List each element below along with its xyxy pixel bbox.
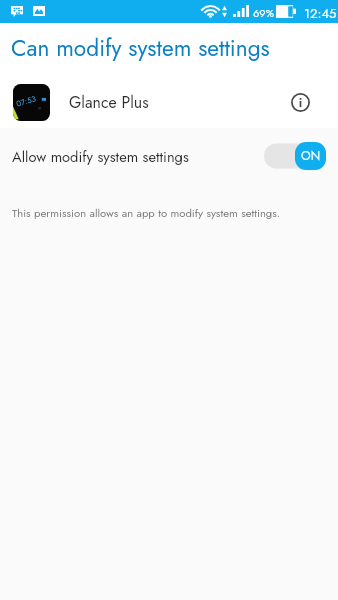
- staticText: 69%: [253, 5, 274, 21]
- staticText: Glance Plus: [69, 91, 149, 114]
- staticText: 07:53: [15, 93, 37, 110]
- staticText: This permission allows an app to modify …: [12, 205, 281, 221]
- staticText: ON: [301, 147, 321, 165]
- staticText: Can modify system settings: [11, 32, 270, 65]
- staticText: 12:45: [304, 4, 337, 23]
- button[interactable]: 07:53: [0, 79, 338, 125]
- button[interactable]: Info: [285, 87, 315, 117]
- button[interactable]: ON: [264, 142, 326, 170]
- staticText: Allow modify system settings: [12, 146, 189, 167]
- button[interactable]: Allow modify system settings: [0, 131, 338, 181]
